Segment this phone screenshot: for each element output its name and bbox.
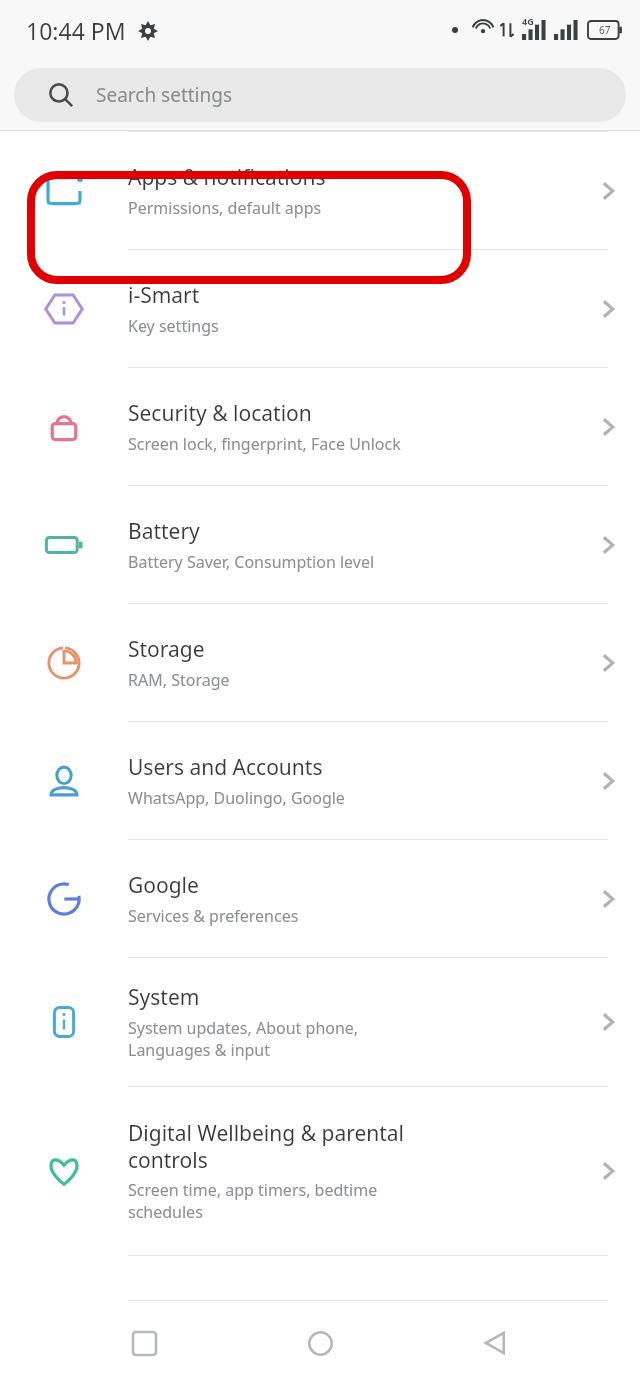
- staticText: Services & preferences: [128, 905, 299, 927]
- button[interactable]: Apps & notifications: [0, 132, 640, 249]
- button[interactable]: Recents: [112, 1311, 176, 1375]
- staticText: Storage: [128, 635, 205, 664]
- staticText: Screen lock, fingerprint, Face Unlock: [128, 433, 401, 455]
- staticText: Apps & notifications: [128, 163, 326, 192]
- staticText: WhatsApp, Duolingo, Google: [128, 787, 345, 809]
- button[interactable]: Security & location: [0, 368, 640, 485]
- staticText: i-Smart: [128, 281, 200, 310]
- button[interactable]: Storage: [0, 604, 640, 721]
- staticText: 4G: [522, 15, 534, 27]
- staticText: Key settings: [128, 315, 219, 337]
- button[interactable]: Search settings: [14, 68, 626, 122]
- button[interactable]: Battery: [0, 486, 640, 603]
- staticText: Google: [128, 871, 199, 900]
- button[interactable]: Google: [0, 840, 640, 957]
- staticText: Search settings: [96, 82, 233, 108]
- staticText: Battery: [128, 517, 200, 546]
- staticText: Screen time, app timers, bedtime schedul…: [128, 1179, 378, 1223]
- button[interactable]: Home: [288, 1311, 352, 1375]
- staticText: System updates, About phone, Languages &…: [128, 1017, 359, 1061]
- button[interactable]: Back: [464, 1311, 528, 1375]
- staticText: RAM, Storage: [128, 669, 230, 691]
- staticText: Battery Saver, Consumption level: [128, 551, 375, 573]
- button[interactable]: i-Smart: [0, 250, 640, 367]
- staticText: Security & location: [128, 399, 312, 428]
- button[interactable]: System: [0, 958, 640, 1086]
- staticText: Users and Accounts: [128, 753, 323, 782]
- staticText: System: [128, 983, 200, 1012]
- staticText: 10:44 PM: [26, 15, 126, 46]
- staticText: Permissions, default apps: [128, 197, 322, 219]
- button[interactable]: Users and Accounts: [0, 722, 640, 839]
- staticText: Digital Wellbeing & parental controls: [128, 1119, 405, 1174]
- staticText: 67: [599, 23, 611, 37]
- button[interactable]: Digital Wellbeing & parental controls: [0, 1087, 640, 1255]
